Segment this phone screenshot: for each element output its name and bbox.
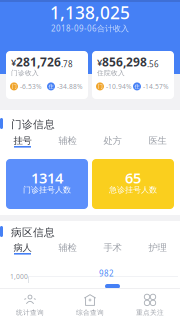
button[interactable]: 统计查询 [0,290,60,320]
staticText: 住 [48,83,53,90]
button[interactable]: 医生 [135,135,180,151]
staticText: 门诊挂号人数 [23,185,71,195]
staticText: 急诊挂号人数 [109,185,157,195]
staticText: 1314 [31,168,63,187]
staticText: ¥ [11,56,16,68]
staticText: 住院收入 [97,69,125,77]
staticText: 门 [11,83,16,90]
staticText: 护理 [148,242,166,253]
staticText: 住 [134,83,139,90]
staticText: 门诊信息 [11,118,55,131]
staticText: 门 [97,83,102,90]
staticText: .56 [147,59,159,69]
staticText: -6.53% [20,82,42,91]
staticText: .78 [61,59,73,69]
staticText: -14.57% [143,82,169,91]
staticText: 1,000 [10,272,28,281]
staticText: 重点关注 [136,308,164,317]
staticText: ¥ [97,56,102,68]
button[interactable]: 手术 [90,242,135,258]
staticText: 65 [125,168,141,187]
staticText: 辅检 [58,242,76,253]
staticText: 病区信息 [11,226,55,239]
button[interactable]: 辅检 [45,242,90,258]
staticText: 医生 [148,135,166,146]
staticText: 门诊收入 [11,69,39,77]
button[interactable]: 处方 [90,135,135,151]
staticText: 1,138,025 [50,1,130,24]
staticText: 综合查询 [76,308,104,317]
staticText: 281,726 [16,54,61,70]
button[interactable]: 辅检 [45,135,90,151]
button[interactable]: 重点关注 [120,290,180,320]
button[interactable]: 综合查询 [60,290,120,320]
button[interactable]: 挂号 [0,135,45,151]
staticText: 统计查询 [16,308,44,317]
staticText: 挂号 [13,135,31,146]
staticText: 手术 [103,242,121,253]
button[interactable]: 65 [92,159,174,209]
staticText: 病人 [13,242,31,253]
button[interactable]: 病人 [0,242,45,258]
button[interactable]: 1314 [6,159,88,209]
staticText: 2018-09-06合计收入 [51,23,129,34]
staticText: 982 [99,268,114,279]
staticText: -10.94% [106,82,132,91]
button[interactable]: 护理 [135,242,180,258]
staticText: 辅检 [58,135,76,146]
staticText: 856,298 [102,54,147,70]
staticText: 处方 [103,135,121,146]
staticText: -34.88% [57,82,83,91]
